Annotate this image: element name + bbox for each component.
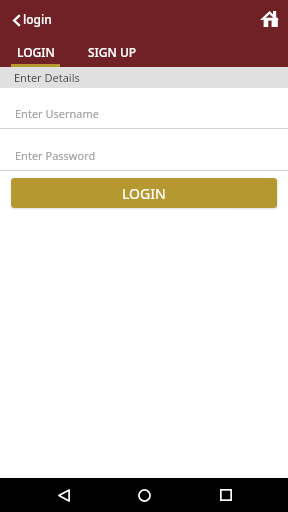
button[interactable]: LOGIN [0,36,71,67]
button[interactable]: Home [251,0,288,36]
button[interactable]: Recent apps [185,478,266,512]
staticText: LOGIN [17,44,55,60]
button[interactable]: SIGN UP [71,36,154,67]
staticText: Enter Username [15,106,100,121]
button[interactable]: Navigate up [0,0,21,36]
button[interactable]: LOGIN [11,178,277,208]
staticText: login [23,11,52,27]
button[interactable]: Enter Password [0,129,288,171]
staticText: LOGIN [122,184,166,203]
staticText: Enter Password [15,148,96,163]
button[interactable]: Enter Username [0,88,288,129]
button[interactable]: Home [104,478,185,512]
staticText: SIGN UP [88,44,137,60]
staticText: Enter Details [14,70,80,85]
button[interactable]: Back [23,478,104,512]
